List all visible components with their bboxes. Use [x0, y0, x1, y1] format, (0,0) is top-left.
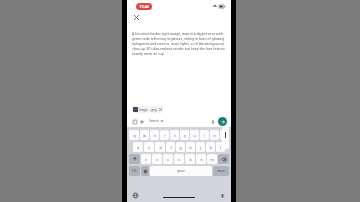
staticText: i	[204, 133, 205, 138]
staticText: m	[210, 157, 214, 162]
staticText: k	[210, 145, 212, 150]
button[interactable]: w	[140, 130, 149, 140]
button[interactable]	[129, 154, 140, 164]
button[interactable]: s	[144, 142, 154, 152]
staticText: p	[223, 133, 226, 138]
button[interactable]	[218, 154, 229, 164]
button[interactable]: q	[129, 130, 139, 140]
staticText: y	[184, 133, 186, 138]
staticText: Search	[149, 119, 160, 123]
staticText: Image - .jpeg	[139, 108, 157, 112]
button[interactable]: k	[206, 142, 215, 152]
staticText: j	[200, 145, 201, 150]
button[interactable]: f	[166, 142, 175, 152]
button[interactable]: Dictation	[219, 192, 226, 199]
button[interactable]: p	[220, 130, 229, 140]
staticText: 123	[132, 169, 137, 173]
button[interactable]: Image - .jpeg	[132, 106, 163, 113]
staticText: n	[200, 157, 203, 162]
button[interactable]: v	[174, 154, 184, 164]
staticText: u	[193, 133, 196, 138]
staticText: g	[179, 145, 182, 150]
staticText: v	[178, 157, 180, 162]
staticText: z	[145, 157, 147, 162]
button[interactable]: Change keyboard	[132, 192, 139, 199]
staticText: r	[164, 133, 166, 138]
button[interactable]: Search	[148, 118, 164, 124]
staticText: c	[167, 157, 169, 162]
staticText: a	[137, 145, 139, 150]
staticText: s	[148, 145, 150, 150]
staticText: h	[189, 145, 192, 150]
button[interactable]: m	[207, 154, 217, 164]
button[interactable]: r	[160, 130, 169, 140]
staticText: return	[217, 169, 225, 173]
button[interactable]: g	[176, 142, 185, 152]
button[interactable]: Add image	[131, 118, 138, 125]
button[interactable]: Close	[132, 13, 140, 21]
button[interactable]	[141, 166, 149, 176]
button[interactable]: Voice input	[209, 118, 216, 125]
button[interactable]: 123	[129, 166, 140, 176]
staticText: space	[177, 169, 185, 173]
staticText: A futuristic hacker-style image, man in …	[132, 31, 226, 56]
button[interactable]: Add	[138, 118, 145, 125]
button[interactable]: e	[150, 130, 159, 140]
button[interactable]: a	[133, 142, 143, 152]
button[interactable]: d	[155, 142, 165, 152]
staticText: t	[174, 133, 176, 138]
button[interactable]: o	[210, 130, 219, 140]
staticText: l	[220, 145, 221, 150]
button[interactable]: n	[196, 154, 206, 164]
button[interactable]: l	[216, 142, 225, 152]
button[interactable]: Send	[218, 117, 227, 126]
button[interactable]: h	[186, 142, 195, 152]
button[interactable]: x	[152, 154, 162, 164]
button[interactable]: j	[196, 142, 205, 152]
button[interactable]: t	[170, 130, 179, 140]
staticText: w	[143, 133, 146, 138]
button[interactable]: z	[141, 154, 151, 164]
staticText: x	[156, 157, 158, 162]
staticText: d	[159, 145, 162, 150]
button[interactable]: return	[213, 166, 229, 176]
staticText: q	[133, 133, 136, 138]
button[interactable]: i	[200, 130, 209, 140]
button[interactable]: c	[163, 154, 173, 164]
staticText: o	[213, 133, 216, 138]
staticText: e	[154, 133, 156, 138]
staticText: 17:44	[139, 4, 149, 9]
button[interactable]: b	[185, 154, 195, 164]
staticText: f	[170, 145, 172, 150]
staticText: b	[189, 157, 192, 162]
button[interactable]: y	[180, 130, 189, 140]
button[interactable]: space	[150, 166, 212, 176]
button[interactable]: u	[190, 130, 199, 140]
